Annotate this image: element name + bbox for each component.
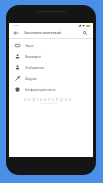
staticText: applaunchpad [24,96,73,102]
staticText: Отображение [25,66,45,70]
button[interactable]: Шаурма [9,73,93,84]
staticText: 13:49 [13,24,19,27]
button[interactable]: Взаимодей [9,51,93,62]
staticText: Заголовок маленький [24,30,77,35]
staticText: mockup generator [40,102,58,105]
button[interactable]: Конфиденциальность [9,84,93,95]
button[interactable]: Search [77,27,93,38]
button[interactable]: Экран [9,40,93,51]
button[interactable]: Back [9,27,22,38]
button[interactable]: Отображение [9,62,93,73]
staticText: Шаурма [25,77,37,81]
staticText: Взаимодей [25,55,41,59]
staticText: Конфиденциальность [25,88,56,92]
staticText: Экран [25,44,34,48]
